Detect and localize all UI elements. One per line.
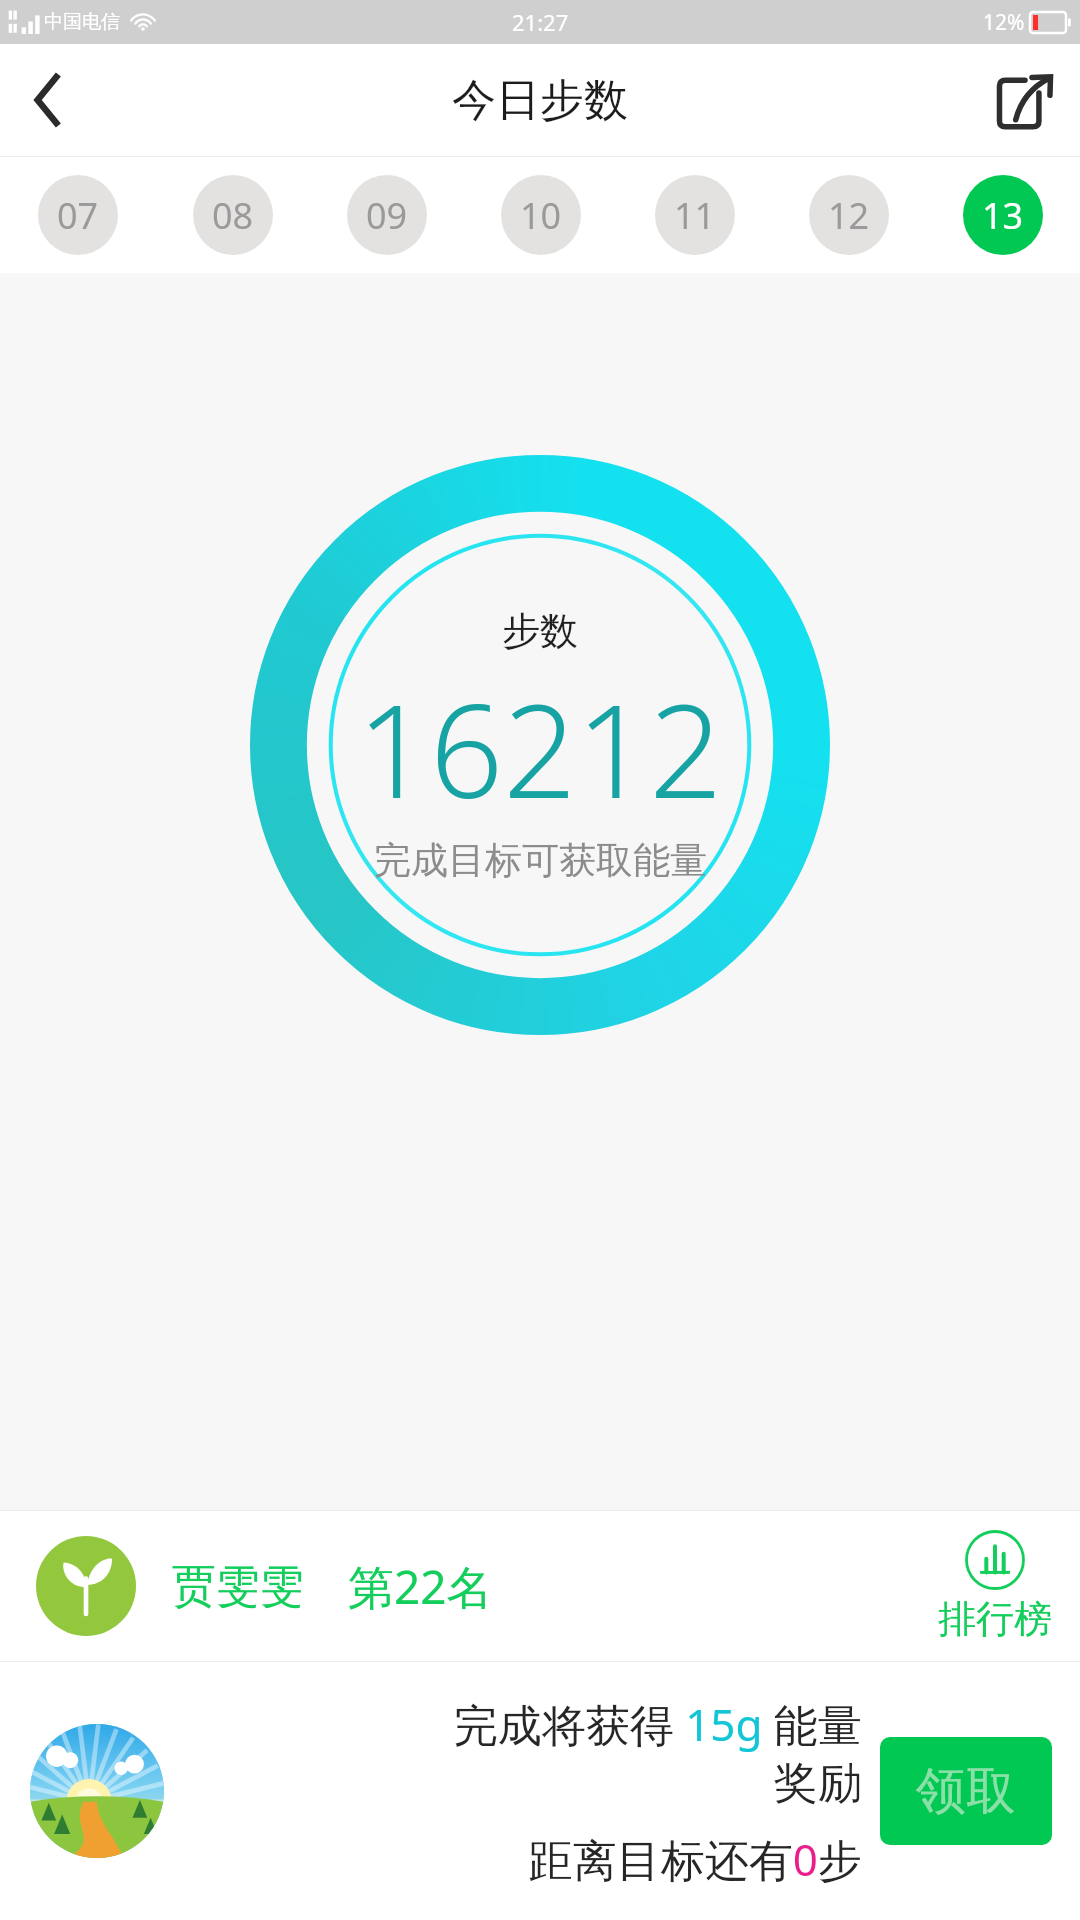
staticText: 10 [520,191,562,240]
staticText: 第22名 [348,1555,493,1618]
staticText: 奖励 [774,1756,862,1811]
staticText: 步数 [502,607,578,655]
staticText: 09 [366,191,408,240]
button[interactable]: 领取 [880,1737,1052,1845]
button[interactable]: 09 [347,175,427,255]
button[interactable]: 12 [809,175,889,255]
staticText: 08 [212,191,254,240]
staticText: 12 [828,191,870,240]
staticText: 21:27 [512,7,569,37]
staticText: 距离目标还有0步 [188,1829,862,1889]
staticText: 16212 [357,661,723,835]
staticText: 11 [674,191,716,240]
staticText: 领取 [916,1760,1016,1823]
staticText: 中国电信 [44,10,120,34]
button[interactable]: 13 [963,175,1043,255]
button[interactable]: 贾雯雯 [0,1511,1080,1661]
button[interactable]: Share [970,45,1080,155]
button[interactable]: 07 [38,175,118,255]
button[interactable]: Back [0,52,96,148]
staticText: 排行榜 [938,1595,1052,1643]
button[interactable]: 排行榜 [938,1529,1052,1643]
button[interactable]: 11 [655,175,735,255]
staticText: 07 [57,191,99,240]
staticText: 今日步数 [452,73,628,128]
staticText: 13 [982,191,1024,240]
button[interactable]: 08 [193,175,273,255]
staticText: 完成目标可获取能量 [374,837,707,884]
staticText: 12% [983,8,1025,37]
button[interactable]: 10 [501,175,581,255]
staticText: 贾雯雯 [172,1559,304,1614]
staticText: 完成将获得 15g 能量 [188,1694,862,1754]
